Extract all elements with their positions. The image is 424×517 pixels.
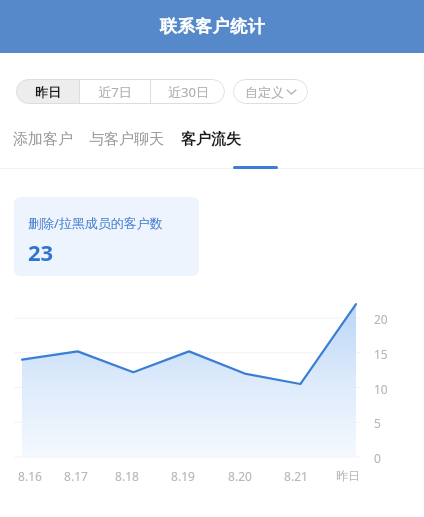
staticText: 删除/拉黑成员的客户数 — [28, 214, 163, 232]
button[interactable]: 近7日 — [80, 79, 150, 104]
staticText: 联系客户统计 — [160, 16, 265, 37]
staticText: 10 — [374, 381, 388, 397]
staticText: 5 — [374, 415, 381, 431]
staticText: 23 — [28, 237, 54, 267]
staticText: 8.20 — [228, 468, 252, 484]
staticText: 昨日 — [336, 468, 360, 483]
staticText: 8.21 — [284, 468, 308, 484]
staticText: 自定义 — [245, 84, 284, 100]
button[interactable]: 与客户聊天 — [89, 122, 164, 156]
staticText: 8.16 — [18, 468, 42, 484]
staticText: 15 — [374, 346, 388, 362]
staticText: 昨日 — [35, 84, 61, 100]
staticText: 添加客户 — [13, 130, 73, 149]
button[interactable]: 昨日 — [16, 79, 79, 104]
button[interactable]: 添加客户 — [13, 122, 73, 156]
staticText: 近7日 — [98, 83, 132, 101]
button[interactable]: 近30日 — [151, 79, 225, 104]
staticText: 与客户聊天 — [89, 130, 164, 149]
staticText: 20 — [374, 311, 388, 327]
staticText: 8.17 — [64, 468, 88, 484]
staticText: 8.18 — [115, 468, 139, 484]
button[interactable]: 自定义 — [233, 79, 308, 104]
staticText: 近30日 — [168, 83, 209, 101]
button[interactable]: 客户流失 — [181, 122, 241, 156]
staticText: 0 — [374, 450, 381, 466]
staticText: 8.19 — [171, 468, 195, 484]
button[interactable]: 删除/拉黑成员的客户数 — [14, 197, 199, 276]
staticText: 客户流失 — [181, 130, 241, 149]
